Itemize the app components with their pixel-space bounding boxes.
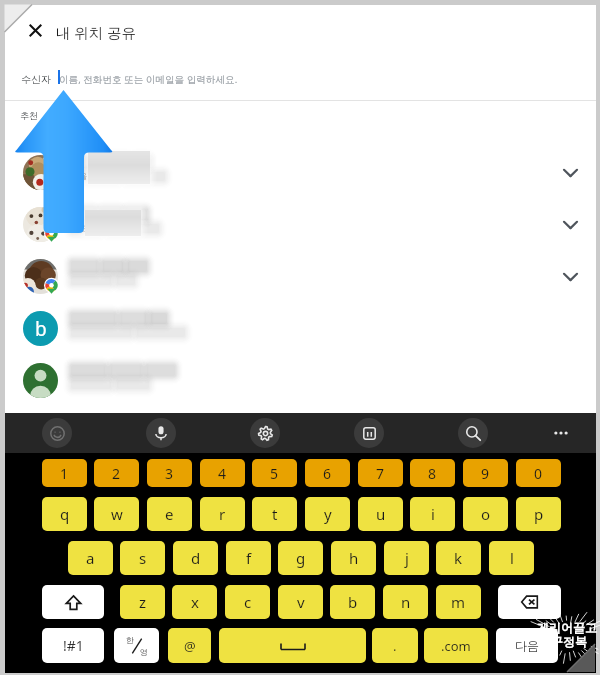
button[interactable]: .com	[424, 628, 488, 663]
button[interactable]: 5	[252, 459, 297, 487]
button[interactable]: a	[68, 541, 113, 575]
button[interactable]: r	[200, 497, 245, 531]
button[interactable]: 6	[305, 459, 350, 487]
staticText: k	[454, 548, 463, 568]
staticText: 추천	[20, 110, 38, 121]
button[interactable]: 7	[358, 459, 403, 487]
button[interactable]: .	[372, 628, 418, 663]
button[interactable]: m	[436, 585, 481, 619]
staticText: g	[296, 548, 306, 568]
staticText: f	[246, 548, 252, 568]
staticText: 서울	[71, 171, 87, 181]
button[interactable]: Expand	[548, 150, 592, 194]
staticText: @	[184, 637, 196, 655]
staticText: 9	[481, 464, 490, 483]
button[interactable]: p	[516, 497, 561, 531]
button[interactable]: Space	[219, 628, 366, 663]
button[interactable]	[5, 354, 596, 406]
button[interactable]: t	[252, 497, 297, 531]
button[interactable]: 0	[516, 459, 561, 487]
staticText: m	[451, 592, 466, 612]
button[interactable]: b	[5, 302, 596, 354]
button[interactable]: o	[463, 497, 508, 531]
button[interactable]: n	[383, 585, 428, 619]
staticText: r	[219, 504, 226, 524]
button[interactable]: 4	[200, 459, 245, 487]
button[interactable]: j	[384, 541, 429, 575]
staticText: 내 위치 공유	[56, 22, 137, 42]
button[interactable]: l	[489, 541, 534, 575]
button[interactable]: Expand	[5, 250, 596, 302]
staticText: x	[191, 592, 199, 612]
staticText: 7	[376, 464, 385, 483]
button[interactable]: Clipboard	[354, 418, 384, 448]
staticText: 게리어끌고	[537, 620, 597, 635]
button[interactable]: q	[42, 497, 87, 531]
staticText: 영	[140, 647, 148, 657]
staticText: v	[297, 592, 305, 612]
button[interactable]: k	[436, 541, 481, 575]
staticText: 수신자	[21, 73, 51, 86]
button[interactable]: h	[331, 541, 376, 575]
button[interactable]: Expand	[548, 202, 592, 246]
button[interactable]: u	[358, 497, 403, 531]
staticText: w	[111, 504, 123, 524]
staticText: i	[431, 504, 435, 524]
button[interactable]: d	[173, 541, 218, 575]
button[interactable]: y	[5, 146, 596, 198]
staticText: 6	[323, 464, 332, 483]
button[interactable]: i	[410, 497, 455, 531]
staticText: 0	[534, 464, 543, 483]
button[interactable]: w	[94, 497, 139, 531]
button[interactable]: s	[120, 541, 165, 575]
button[interactable]: Backspace	[498, 585, 561, 619]
button[interactable]: g	[278, 541, 323, 575]
button[interactable]: Settings	[250, 418, 280, 448]
button[interactable]: v	[278, 585, 323, 619]
button[interactable]: Close	[14, 9, 56, 51]
staticText: 이름, 전화번호 또는 이메일을 입력하세요.	[59, 73, 238, 86]
button[interactable]: Expand	[548, 254, 592, 298]
staticText: s	[139, 548, 147, 568]
button[interactable]: 8	[410, 459, 455, 487]
staticText: q	[60, 504, 70, 524]
button[interactable]: x	[172, 585, 217, 619]
button[interactable]: More options	[546, 418, 576, 448]
staticText: 서초을	[71, 223, 95, 233]
staticText: h	[349, 548, 359, 568]
button[interactable]: Emoji	[42, 418, 72, 448]
staticText: t	[272, 504, 278, 524]
staticText: l	[510, 548, 514, 568]
button[interactable]: 2	[94, 459, 139, 487]
staticText: n	[401, 592, 411, 612]
staticText: 2	[112, 464, 121, 483]
button[interactable]: @	[168, 628, 211, 663]
button[interactable]: 9	[463, 459, 508, 487]
button[interactable]: Search	[458, 418, 488, 448]
staticText: .com	[441, 637, 471, 655]
staticText: a	[86, 548, 95, 568]
button[interactable]: Voice input	[146, 418, 176, 448]
button[interactable]: e	[147, 497, 192, 531]
button[interactable]: le	[5, 198, 596, 250]
staticText: 8	[428, 464, 437, 483]
button[interactable]: Language	[114, 628, 159, 663]
button[interactable]: f	[226, 541, 271, 575]
button[interactable]: 1	[42, 459, 87, 487]
button[interactable]: 수신자	[5, 60, 596, 100]
button[interactable]: 다음	[496, 628, 558, 663]
button[interactable]: 3	[147, 459, 192, 487]
button[interactable]: !#1	[42, 628, 104, 663]
button[interactable]: y	[305, 497, 350, 531]
button[interactable]: Shift	[42, 585, 104, 619]
staticText: o	[481, 504, 491, 524]
button[interactable]: b	[330, 585, 375, 619]
staticText: 구정복	[551, 634, 587, 649]
staticText: p	[534, 504, 544, 524]
staticText: 1	[60, 464, 69, 483]
button[interactable]: c	[225, 585, 270, 619]
button[interactable]: z	[120, 585, 165, 619]
staticText: 다음	[515, 638, 539, 653]
